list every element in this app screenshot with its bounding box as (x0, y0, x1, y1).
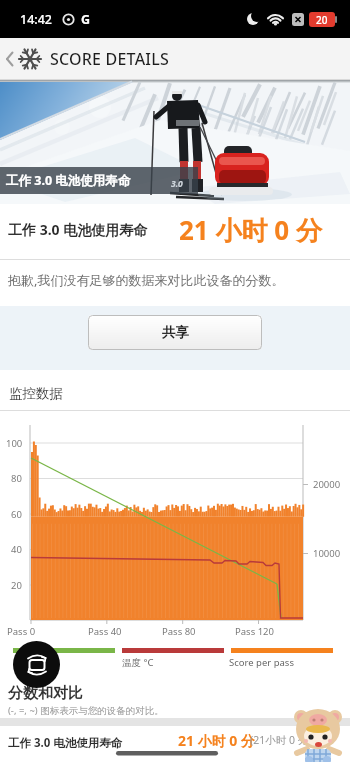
staticText: 40 (11, 543, 22, 556)
staticText: (21小时 0 分) (250, 733, 312, 747)
staticText: Score per pass (229, 656, 294, 669)
staticText: (-, =, ~) 图标表示与您的设备的对比。 (8, 704, 164, 717)
staticText: 工作 3.0 电池使用寿命 (8, 220, 148, 239)
staticText: 100 (6, 437, 23, 450)
staticText: 电池 % (13, 656, 43, 669)
staticText: 14:42 (20, 11, 53, 28)
staticText: 工作 3.0 电池使用寿命 (8, 735, 123, 751)
staticText: 10000 (313, 547, 341, 560)
staticText: 温度 °C (122, 656, 154, 669)
staticText: 抱歉,我们没有足够的数据来对比此设备的分数。 (8, 271, 285, 289)
staticText: G (81, 11, 91, 28)
staticText: 监控数据 (9, 385, 63, 402)
button[interactable]: 工作 3.0 电池使用寿命 (0, 726, 350, 762)
staticText: SCORE DETAILS (50, 48, 169, 70)
staticText: 60 (11, 508, 22, 521)
staticText: 20 (11, 579, 22, 592)
staticText: 3.0 (171, 178, 183, 190)
button[interactable]: 共享 (88, 315, 262, 350)
staticText: Pass 0 (7, 625, 36, 638)
staticText: 20 (316, 13, 328, 27)
staticText: 80 (11, 472, 22, 485)
button[interactable] (13, 641, 60, 688)
button[interactable]: SCORE DETAILS (0, 38, 350, 80)
staticText: 21 小时 0 分 (178, 731, 255, 750)
staticText: 21 小时 0 分 (179, 212, 322, 248)
staticText: 工作 3.0 电池使用寿命 (6, 172, 131, 189)
staticText: Pass 80 (162, 625, 196, 638)
staticText: 分数和对比 (8, 684, 83, 703)
staticText: Pass 120 (235, 625, 274, 638)
staticText: 20000 (313, 478, 341, 491)
staticText: Pass 40 (88, 625, 122, 638)
staticText: 共享 (162, 324, 189, 341)
